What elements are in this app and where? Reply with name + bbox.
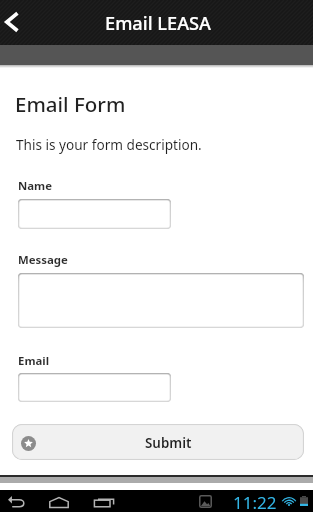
- button[interactable]: [18, 199, 171, 229]
- staticText: Email: [18, 353, 50, 369]
- button[interactable]: [18, 373, 171, 402]
- staticText: 11:22: [233, 491, 277, 512]
- staticText: Email Form: [15, 90, 126, 118]
- staticText: Name: [18, 178, 52, 194]
- staticText: This is your form description.: [16, 135, 202, 154]
- staticText: Message: [18, 252, 68, 268]
- staticText: Submit: [145, 434, 192, 452]
- button[interactable]: Recent apps: [90, 490, 116, 512]
- button[interactable]: Submit: [12, 424, 304, 460]
- button[interactable]: Back: [0, 0, 47, 45]
- button[interactable]: [18, 273, 304, 328]
- button[interactable]: Home: [46, 490, 72, 512]
- staticText: Email LEASA: [105, 11, 211, 36]
- button[interactable]: Back: [4, 490, 30, 512]
